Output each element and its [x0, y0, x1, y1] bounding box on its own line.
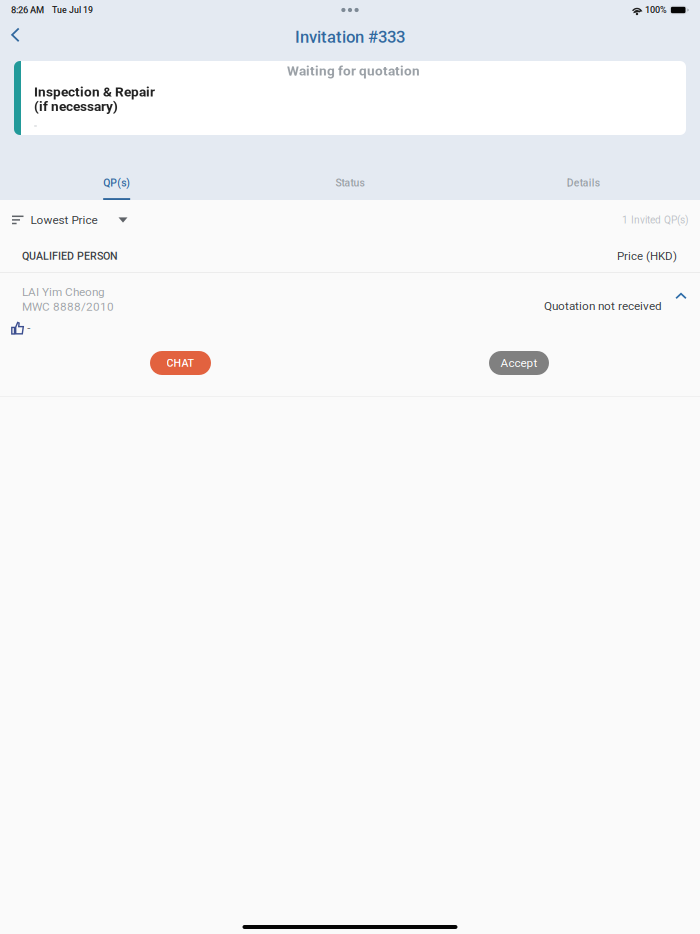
staticText: - [27, 321, 30, 335]
button[interactable]: Lowest Price [0, 200, 139, 240]
staticText: 1 Invited QP(s) [622, 214, 689, 226]
button[interactable]: Details [467, 178, 700, 200]
staticText: Invitation #333 [295, 27, 405, 47]
staticText: MWC 8888/2010 [22, 300, 114, 314]
staticText: 100% [645, 5, 667, 15]
staticText: Waiting for quotation [287, 63, 420, 79]
staticText: Price (HKD) [617, 249, 677, 263]
staticText: Tue Jul 19 [52, 5, 93, 15]
staticText: Status [335, 177, 364, 189]
staticText: CHAT [166, 357, 194, 369]
button[interactable]: Collapse [670, 286, 692, 306]
staticText: Quotation not received [544, 299, 662, 313]
button[interactable]: Back [0, 20, 31, 50]
button[interactable]: QP(s) [0, 178, 233, 200]
staticText: Lowest Price [30, 213, 97, 227]
staticText: Accept [500, 356, 537, 370]
staticText: - [34, 119, 37, 132]
staticText: 8:26 AM [11, 4, 44, 15]
staticText: LAI Yim Cheong [22, 285, 105, 299]
staticText: Inspection & Repair [34, 84, 155, 100]
staticText: Details [567, 177, 600, 189]
staticText: QP(s) [103, 177, 130, 189]
button[interactable]: Status [233, 178, 467, 200]
staticText: (if necessary) [34, 98, 118, 114]
button[interactable]: Accept [489, 351, 549, 375]
button[interactable]: CHAT [150, 351, 211, 375]
staticText: QUALIFIED PERSON [22, 250, 118, 262]
